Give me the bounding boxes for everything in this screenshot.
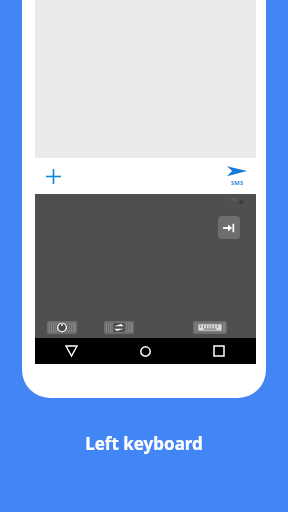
button[interactable]: Switch keyboard bbox=[104, 321, 134, 334]
button[interactable]: Add attachment bbox=[35, 158, 71, 194]
button[interactable]: Home bbox=[108, 338, 182, 364]
button[interactable]: Recent apps bbox=[182, 338, 256, 364]
button[interactable]: Send SMS bbox=[218, 158, 256, 194]
button[interactable]: Power / close keyboard bbox=[47, 321, 77, 334]
button[interactable]: Tab bbox=[218, 216, 240, 239]
staticText: Left keyboard bbox=[85, 432, 203, 455]
button[interactable]: Back bbox=[35, 338, 108, 364]
staticText: SMS bbox=[231, 179, 244, 187]
button[interactable]: Show keyboard bbox=[193, 321, 227, 334]
